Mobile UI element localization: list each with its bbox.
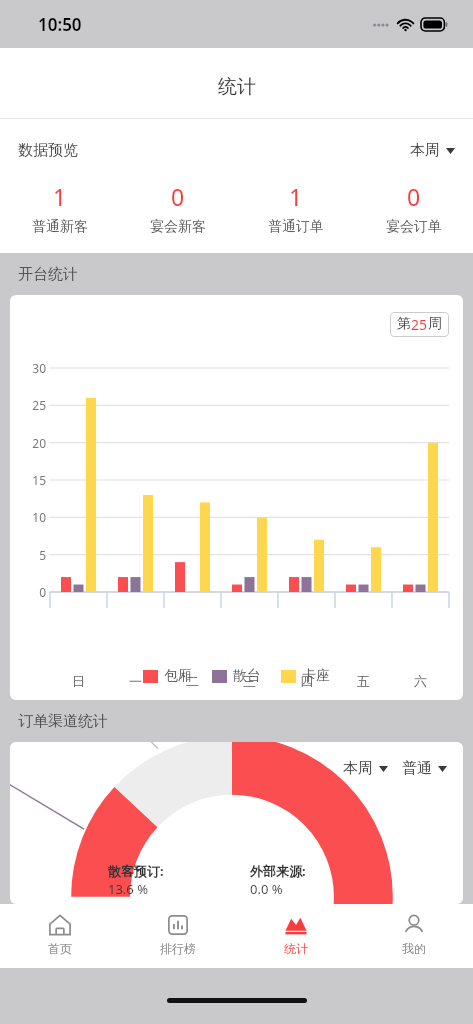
button[interactable]: 0 [119, 181, 237, 236]
other: 首页 [48, 913, 72, 937]
staticText: 日 [50, 673, 107, 689]
staticText: 宴会订单 [386, 218, 442, 236]
button[interactable]: 卡座 [271, 667, 340, 685]
staticText: 普通订单 [268, 218, 324, 236]
staticText: 排行榜 [160, 941, 196, 956]
staticText: 外部来源: [250, 862, 306, 880]
staticText: 10:50 [38, 13, 82, 36]
button[interactable]: 统计 [237, 904, 355, 968]
staticText: 我的 [402, 941, 426, 956]
staticText: 1 [53, 181, 67, 212]
staticText: 本周 [343, 759, 373, 778]
staticText: 0 [26, 584, 46, 600]
staticText: 0 [171, 181, 185, 212]
staticText: 散客预订: [108, 862, 164, 880]
staticText: 包厢 [164, 667, 192, 685]
staticText: 13.6 % [108, 880, 148, 898]
button[interactable]: 普通 [388, 759, 447, 778]
staticText: 数据预览 [18, 141, 78, 160]
button[interactable]: 本周 [410, 141, 455, 160]
other: 排行榜 [166, 913, 190, 937]
button[interactable]: 包厢 [133, 667, 202, 685]
staticText: 一 [107, 673, 164, 689]
staticText: 普通新客 [32, 218, 88, 236]
staticText: 统计 [284, 941, 308, 956]
staticText: 周 [428, 315, 442, 333]
staticText: 20 [26, 435, 46, 451]
button[interactable]: 散台 [202, 667, 271, 685]
button[interactable]: 我的 [355, 904, 473, 968]
button[interactable]: 排行榜 [119, 904, 237, 968]
staticText: 5 [26, 547, 46, 563]
staticText: 订单渠道统计 [18, 712, 108, 731]
staticText: 宴会新客 [150, 218, 206, 236]
staticText: 六 [392, 673, 449, 689]
staticText: 15 [26, 472, 46, 488]
staticText: 10 [26, 509, 46, 525]
staticText: 本周 [410, 141, 440, 160]
staticText: 二 [164, 673, 221, 689]
button[interactable]: 首页 [0, 904, 119, 968]
other: 我的 [402, 913, 426, 937]
staticText: 五 [335, 673, 392, 689]
staticText: 25 [26, 397, 46, 413]
staticText: 普通 [402, 759, 432, 778]
button[interactable]: 本周 [329, 759, 388, 778]
button[interactable]: 第 [390, 312, 449, 337]
staticText: 散台 [233, 667, 261, 685]
other: 统计 [284, 913, 308, 937]
staticText: 25 [411, 315, 428, 334]
staticText: 0 [407, 181, 421, 212]
staticText: 1 [289, 181, 303, 212]
staticText: 首页 [48, 941, 72, 956]
staticText: 卡座 [302, 667, 330, 685]
button[interactable]: 0 [355, 181, 473, 236]
staticText: 四 [278, 673, 335, 689]
staticText: 30 [26, 360, 46, 376]
staticText: 统计 [218, 75, 256, 99]
button[interactable]: 1 [237, 181, 355, 236]
staticText: 0.0 % [250, 880, 283, 898]
staticText: 三 [221, 673, 278, 689]
button[interactable]: 1 [0, 181, 119, 236]
staticText: 第 [397, 315, 411, 333]
staticText: 开台统计 [18, 265, 78, 284]
